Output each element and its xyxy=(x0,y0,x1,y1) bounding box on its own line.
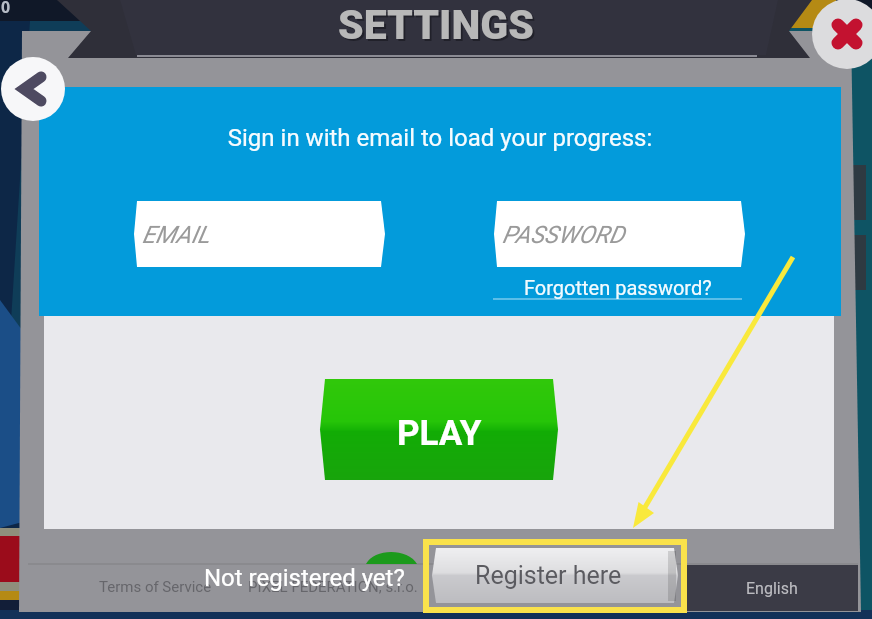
staticText: SETTINGS xyxy=(338,1,534,45)
button[interactable]: English xyxy=(685,565,858,611)
staticText: SETTINGS xyxy=(340,3,536,47)
staticText: Sign in with email to load your progress… xyxy=(40,124,840,152)
staticText: Register here xyxy=(475,561,622,590)
button[interactable]: Forgotten password? xyxy=(493,272,742,302)
staticText: PLAY xyxy=(397,413,482,454)
button[interactable]: Terms of Service xyxy=(99,578,212,596)
staticText: 0 xyxy=(1,0,11,18)
staticText: Forgotten password? xyxy=(524,276,712,299)
button[interactable]: PLAY xyxy=(320,382,558,485)
staticText: PASSWORD xyxy=(502,221,625,249)
button[interactable]: EMAIL xyxy=(137,201,385,268)
button[interactable]: PASSWORD xyxy=(497,201,745,268)
staticText: Not registered yet? xyxy=(204,564,405,592)
button[interactable]: Back xyxy=(1,57,65,121)
staticText: English xyxy=(746,579,798,598)
staticText: PIXEL FEDERATION, s.r.o. xyxy=(248,578,418,596)
staticText: Terms of Service xyxy=(99,578,212,596)
button[interactable]: Register here xyxy=(432,548,664,603)
staticText: EMAIL xyxy=(142,221,210,249)
button[interactable]: Close xyxy=(812,0,872,69)
